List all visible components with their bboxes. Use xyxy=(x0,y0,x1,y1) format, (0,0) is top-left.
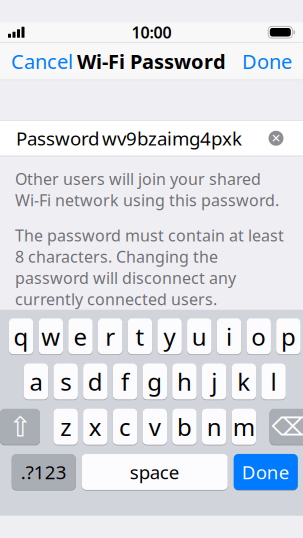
button[interactable]: f xyxy=(113,363,137,400)
button[interactable]: t xyxy=(128,318,152,355)
staticText: i xyxy=(226,320,232,352)
button[interactable]: m xyxy=(232,408,256,445)
staticText: z xyxy=(60,411,71,443)
staticText: q xyxy=(14,320,29,352)
button[interactable]: k xyxy=(232,363,256,400)
staticText: ✕ xyxy=(271,131,281,145)
staticText: ⇧ xyxy=(8,411,31,443)
button[interactable]: u xyxy=(187,318,211,355)
staticText: j xyxy=(211,366,217,397)
button[interactable]: h xyxy=(172,363,197,400)
button[interactable]: c xyxy=(113,408,137,445)
button[interactable]: r xyxy=(98,318,122,355)
staticText: y xyxy=(164,320,176,352)
staticText: f xyxy=(121,366,129,397)
staticText: The password must contain at least 8 cha… xyxy=(15,225,284,310)
staticText: b xyxy=(177,411,192,443)
button[interactable]: x xyxy=(83,408,108,445)
staticText: t xyxy=(135,320,144,352)
staticText: ⌫ xyxy=(271,412,303,441)
staticText: m xyxy=(233,411,255,443)
button[interactable]: v xyxy=(142,408,167,445)
button[interactable]: Shift xyxy=(0,408,40,445)
staticText: w xyxy=(41,320,60,352)
button[interactable]: p xyxy=(276,318,301,355)
staticText: p xyxy=(281,320,296,352)
staticText: a xyxy=(29,366,42,397)
button[interactable]: o xyxy=(246,318,271,355)
button[interactable]: i xyxy=(217,318,241,355)
button[interactable]: a xyxy=(24,363,48,400)
button[interactable]: s xyxy=(53,363,78,400)
button[interactable]: Delete xyxy=(269,408,303,445)
button[interactable]: n xyxy=(202,408,226,445)
button[interactable]: w xyxy=(38,318,63,355)
staticText: n xyxy=(207,411,222,443)
staticText: s xyxy=(60,366,71,397)
button[interactable]: Cancel xyxy=(0,40,84,83)
staticText: x xyxy=(89,411,102,443)
button[interactable]: l xyxy=(261,363,286,400)
staticText: g xyxy=(147,366,162,397)
staticText: c xyxy=(119,411,131,443)
staticText: Wi-Fi Password xyxy=(77,48,226,75)
button[interactable]: space xyxy=(82,453,228,490)
button[interactable]: b xyxy=(172,408,197,445)
staticText: u xyxy=(192,320,207,352)
staticText: wv9bzaimg4pxk xyxy=(102,126,242,151)
button[interactable]: z xyxy=(53,408,78,445)
staticText: 10:00 xyxy=(131,22,171,43)
button[interactable]: Password field xyxy=(0,121,303,156)
staticText: l xyxy=(270,366,276,397)
staticText: Done xyxy=(242,48,292,75)
staticText: Password xyxy=(16,126,99,151)
staticText: o xyxy=(251,320,266,352)
staticText: k xyxy=(237,366,250,397)
staticText: r xyxy=(105,320,115,352)
button[interactable]: d xyxy=(83,363,108,400)
button[interactable]: Numbers and symbols xyxy=(12,453,76,490)
staticText: space xyxy=(130,459,180,484)
staticText: Other users will join your shared Wi-Fi … xyxy=(15,168,279,211)
button[interactable]: g xyxy=(142,363,167,400)
button[interactable]: e xyxy=(68,318,93,355)
button[interactable]: j xyxy=(202,363,226,400)
button[interactable]: q xyxy=(9,318,33,355)
staticText: ⇧ xyxy=(8,411,31,443)
staticText: v xyxy=(149,411,161,443)
button[interactable]: Done xyxy=(234,453,298,490)
button[interactable]: y xyxy=(157,318,182,355)
button[interactable]: Done xyxy=(231,40,303,83)
staticText: e xyxy=(73,320,87,352)
staticText: h xyxy=(177,366,192,397)
staticText: d xyxy=(88,366,103,397)
staticText: Done xyxy=(242,459,290,484)
staticText: .?123 xyxy=(21,459,67,484)
staticText: Cancel xyxy=(11,48,73,75)
